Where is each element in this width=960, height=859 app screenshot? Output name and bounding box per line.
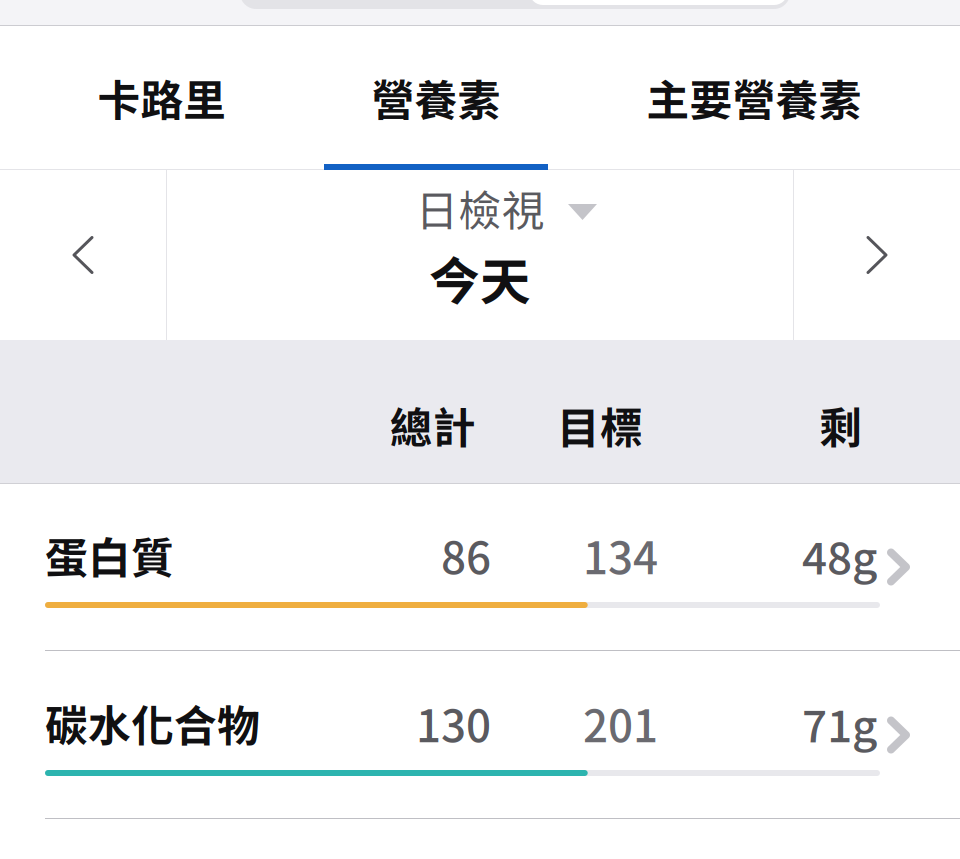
button[interactable]: 前一天 bbox=[0, 170, 166, 340]
staticText: 主要營養素 bbox=[646, 67, 861, 128]
button[interactable]: 卡路里 bbox=[0, 26, 324, 169]
staticText: 134 bbox=[583, 523, 658, 587]
staticText: 目標 bbox=[557, 394, 643, 456]
button[interactable]: 碳水化合物 bbox=[0, 651, 960, 818]
staticText: 130 bbox=[416, 691, 491, 755]
staticText: 蛋白質 bbox=[45, 524, 174, 586]
staticText: 48g bbox=[802, 523, 877, 587]
staticText: 86 bbox=[441, 523, 491, 587]
staticText: 營養素 bbox=[371, 67, 500, 128]
button[interactable]: 蛋白質 bbox=[0, 484, 960, 650]
button[interactable]: 日檢視 bbox=[167, 170, 793, 340]
button[interactable]: 營養素 bbox=[324, 26, 548, 169]
staticText: 總計 bbox=[390, 394, 476, 456]
staticText: 日檢視 bbox=[415, 177, 544, 239]
staticText: 今天 bbox=[429, 241, 531, 315]
staticText: 201 bbox=[583, 691, 658, 755]
staticText: 剩 bbox=[819, 394, 862, 456]
staticText: 71g bbox=[802, 691, 877, 755]
button[interactable]: 主要營養素 bbox=[548, 26, 960, 169]
staticText: 卡路里 bbox=[97, 67, 226, 128]
staticText: 碳水化合物 bbox=[45, 692, 260, 754]
button[interactable]: 後一天 bbox=[794, 170, 960, 340]
